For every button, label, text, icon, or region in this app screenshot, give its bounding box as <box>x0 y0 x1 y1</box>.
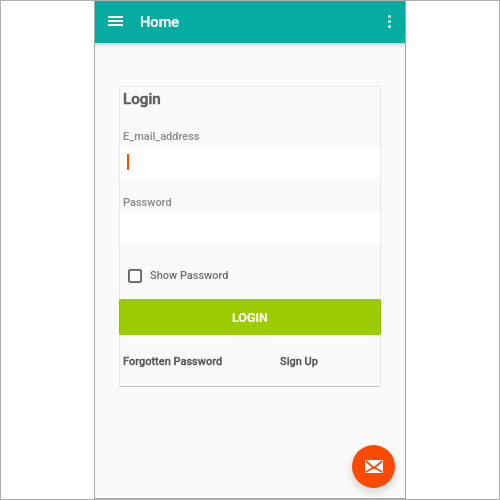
staticText: LOGIN <box>232 310 268 325</box>
staticText: Password <box>123 196 172 209</box>
button[interactable]: Show Password <box>128 264 229 287</box>
staticText: Login <box>123 90 161 108</box>
button[interactable]: Forgotten Password <box>123 355 223 368</box>
button[interactable]: Sign Up <box>280 355 318 368</box>
button[interactable] <box>119 147 381 178</box>
button[interactable]: More options <box>375 7 403 35</box>
staticText: Show Password <box>150 269 229 282</box>
button[interactable]: Compose email <box>352 445 395 488</box>
button[interactable]: Open navigation menu <box>97 4 133 37</box>
staticText: Forgotten Password <box>123 355 223 368</box>
staticText: Sign Up <box>280 355 318 368</box>
button[interactable]: LOGIN <box>119 299 381 335</box>
staticText: E_mail_address <box>123 130 200 143</box>
staticText: Home <box>140 13 180 30</box>
